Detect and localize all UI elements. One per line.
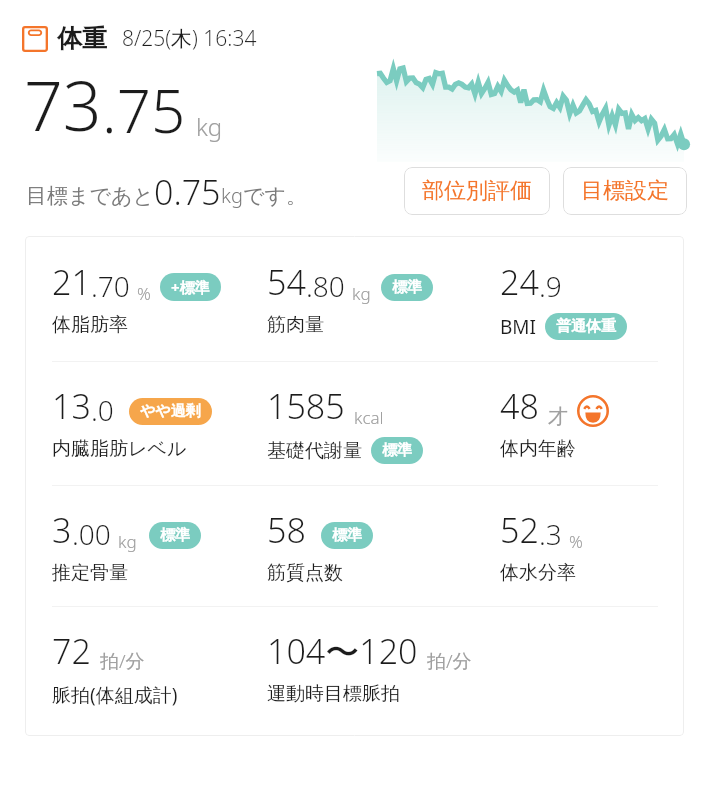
staticText: 普通体重 <box>556 317 616 336</box>
staticText: 1585 <box>267 383 345 429</box>
staticText: kg <box>196 110 223 143</box>
staticText: 標準 <box>160 526 190 545</box>
staticText: 体水分率 <box>500 561 576 585</box>
staticText: 推定骨量 <box>52 561 128 585</box>
staticText: 48 <box>500 383 539 429</box>
staticText: 104〜120 <box>267 628 418 674</box>
staticText: .70 <box>91 267 130 305</box>
button[interactable]: 目標設定 <box>563 167 687 215</box>
staticText: % <box>569 530 583 553</box>
staticText: 体脂肪率 <box>52 313 128 337</box>
staticText: .00 <box>72 515 111 553</box>
staticText: 73 <box>24 58 102 151</box>
staticText: kg <box>221 182 243 209</box>
staticText: 体重 <box>57 23 107 54</box>
staticText: BMI <box>500 314 537 340</box>
staticText: 0.75 <box>154 169 221 215</box>
staticText: 拍/分 <box>100 648 145 674</box>
staticText: 54 <box>267 259 306 305</box>
staticText: .9 <box>539 267 562 305</box>
staticText: 拍/分 <box>427 648 472 674</box>
staticText: 58 <box>267 507 306 553</box>
staticText: kcal <box>354 406 384 429</box>
staticText: 標準 <box>392 278 422 297</box>
staticText: 標準 <box>332 526 362 545</box>
staticText: +標準 <box>171 277 210 297</box>
staticText: 脈拍(体組成計) <box>52 682 178 708</box>
staticText: 目標設定 <box>581 177 669 205</box>
staticText: 21 <box>52 259 91 305</box>
staticText: .0 <box>91 391 114 429</box>
staticText: 目標まであと <box>26 183 154 209</box>
staticText: kg <box>118 530 137 553</box>
other: Weight <box>22 26 48 52</box>
staticText: 運動時目標脈拍 <box>267 682 400 706</box>
staticText: 標準 <box>382 441 412 460</box>
staticText: 3 <box>52 507 72 553</box>
staticText: .80 <box>306 267 345 305</box>
staticText: kg <box>352 282 371 305</box>
staticText: 筋質点数 <box>267 561 343 585</box>
staticText: やや過剰 <box>140 402 201 421</box>
staticText: 72 <box>52 628 91 674</box>
staticText: 体内年齢 <box>500 437 576 461</box>
staticText: 13 <box>52 383 91 429</box>
button[interactable]: 部位別評価 <box>404 167 550 215</box>
staticText: です。 <box>243 183 307 209</box>
staticText: 内臓脂肪レベル <box>52 437 187 461</box>
staticText: .75 <box>102 69 186 151</box>
staticText: % <box>137 282 151 305</box>
staticText: 52 <box>500 507 539 553</box>
staticText: 才 <box>548 404 568 429</box>
staticText: 基礎代謝量 <box>267 439 362 463</box>
staticText: 24 <box>500 259 539 305</box>
staticText: 8/25(木) 16:34 <box>122 24 257 53</box>
staticText: 筋肉量 <box>267 313 324 337</box>
staticText: .3 <box>539 515 562 553</box>
staticText: 部位別評価 <box>422 177 532 205</box>
